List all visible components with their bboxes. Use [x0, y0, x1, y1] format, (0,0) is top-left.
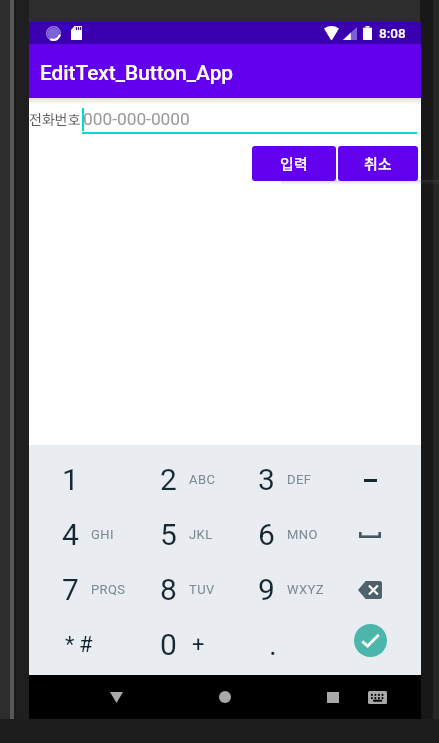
staticText: 5 — [160, 517, 177, 552]
staticText: GHI — [91, 527, 114, 542]
button[interactable]: 2 — [127, 452, 225, 507]
staticText: 0 — [160, 627, 177, 662]
button[interactable]: 3 — [225, 452, 323, 507]
button[interactable]: Space — [348, 513, 392, 557]
staticText: 4 — [62, 517, 79, 552]
button[interactable]: Recent apps — [311, 675, 355, 719]
button[interactable]: Done — [354, 624, 387, 657]
button[interactable]: 4 — [29, 507, 127, 562]
staticText: ABC — [189, 472, 216, 487]
staticText: 취소 — [364, 153, 392, 175]
staticText: MNO — [287, 527, 318, 542]
button[interactable]: Back — [94, 675, 139, 719]
staticText: 1 — [62, 462, 79, 497]
staticText: + — [192, 632, 205, 658]
button[interactable]: 1 — [29, 452, 127, 507]
staticText: 입력 — [280, 153, 308, 175]
staticText: . — [269, 627, 277, 662]
button[interactable]: . — [225, 617, 323, 672]
staticText: PRQS — [91, 582, 126, 597]
staticText: EditText_Button_App — [40, 61, 234, 85]
button[interactable]: Home — [203, 675, 247, 719]
button[interactable]: 5 — [127, 507, 225, 562]
staticText: 000-000-0000 — [83, 109, 190, 129]
button[interactable]: 0 — [127, 617, 225, 672]
staticText: 3 — [258, 462, 275, 497]
button[interactable]: Backspace — [348, 568, 392, 612]
staticText: * # — [65, 632, 93, 658]
staticText: 7 — [62, 572, 79, 607]
button[interactable]: 8 — [127, 562, 225, 617]
staticText: DEF — [287, 472, 312, 487]
button[interactable]: 7 — [29, 562, 127, 617]
staticText: 8 — [160, 572, 177, 607]
staticText: 2 — [160, 462, 177, 497]
staticText: TUV — [189, 582, 215, 597]
staticText: 6 — [258, 517, 275, 552]
button[interactable]: Dash — [348, 458, 392, 502]
button[interactable]: 입력 — [252, 146, 336, 181]
button[interactable]: 취소 — [338, 146, 418, 181]
button[interactable]: Switch keyboard — [355, 675, 400, 719]
button[interactable]: 9 — [225, 562, 323, 617]
staticText: 9 — [258, 572, 275, 607]
staticText: 8:08 — [379, 25, 406, 41]
staticText: 전화번호 — [29, 109, 81, 129]
button[interactable]: * # — [29, 617, 127, 672]
staticText: WXYZ — [287, 582, 324, 597]
button[interactable]: 6 — [225, 507, 323, 562]
staticText: JKL — [189, 527, 213, 542]
